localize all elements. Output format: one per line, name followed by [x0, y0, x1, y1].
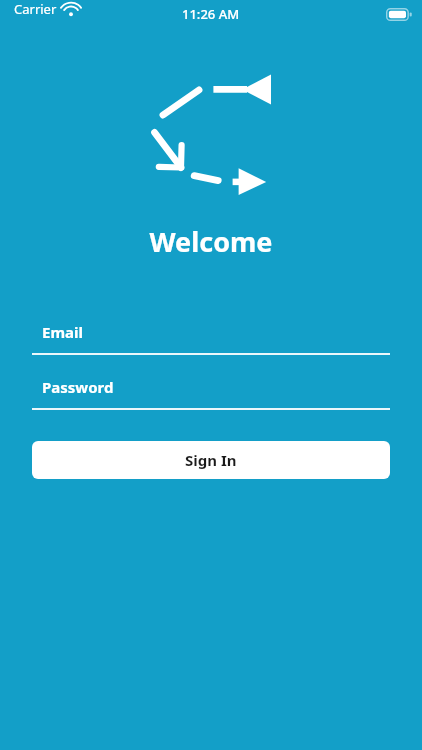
other: Wi-Fi signal: [63, 3, 79, 16]
staticText: Password: [42, 377, 114, 397]
other: App logo: [151, 70, 271, 195]
button[interactable]: Sign In: [32, 441, 390, 479]
staticText: Welcome: [0, 223, 422, 260]
staticText: Sign In: [185, 450, 237, 470]
button[interactable]: Password: [32, 377, 390, 410]
button[interactable]: Email: [32, 322, 390, 355]
other: Battery full: [386, 8, 412, 21]
staticText: Email: [42, 322, 83, 342]
staticText: 11:26 AM: [182, 5, 240, 23]
staticText: Carrier: [14, 0, 57, 18]
